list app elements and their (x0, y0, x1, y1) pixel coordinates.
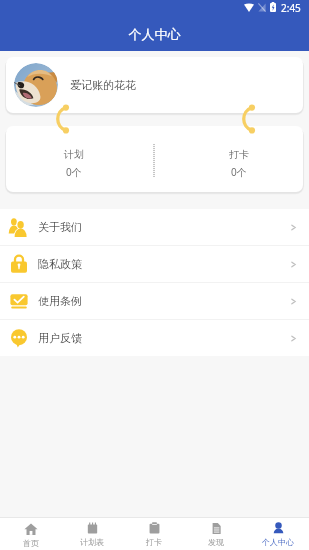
staticText: 计划 (64, 148, 84, 161)
staticText: 0个 (66, 165, 82, 179)
button[interactable]: 关于我们 (0, 209, 309, 245)
staticText: 2:45 (281, 1, 301, 15)
button[interactable]: 发现 (185, 518, 247, 550)
button[interactable]: 首页 (0, 518, 61, 550)
staticText: 隐私政策 (38, 257, 82, 271)
staticText: 打卡 (146, 537, 162, 547)
staticText: 关于我们 (38, 220, 82, 234)
staticText: 首页 (23, 538, 39, 548)
button[interactable]: 打卡 (123, 518, 185, 550)
staticText: 爱记账的花花 (70, 78, 136, 92)
staticText: 使用条例 (38, 294, 82, 308)
button[interactable]: 个人中心 (247, 518, 309, 550)
button[interactable]: 使用条例 (0, 283, 309, 319)
staticText: 0个 (231, 165, 247, 179)
staticText: 发现 (208, 537, 224, 547)
button[interactable]: 隐私政策 (0, 246, 309, 282)
button[interactable]: 计划表 (61, 518, 123, 550)
staticText: 个人中心 (0, 26, 309, 42)
button[interactable]: 爱记账的花花 (6, 57, 303, 113)
staticText: 个人中心 (262, 537, 294, 547)
staticText: 计划表 (80, 537, 104, 547)
button[interactable]: 用户反馈 (0, 320, 309, 356)
staticText: 用户反馈 (38, 331, 82, 345)
staticText: 打卡 (229, 148, 249, 161)
